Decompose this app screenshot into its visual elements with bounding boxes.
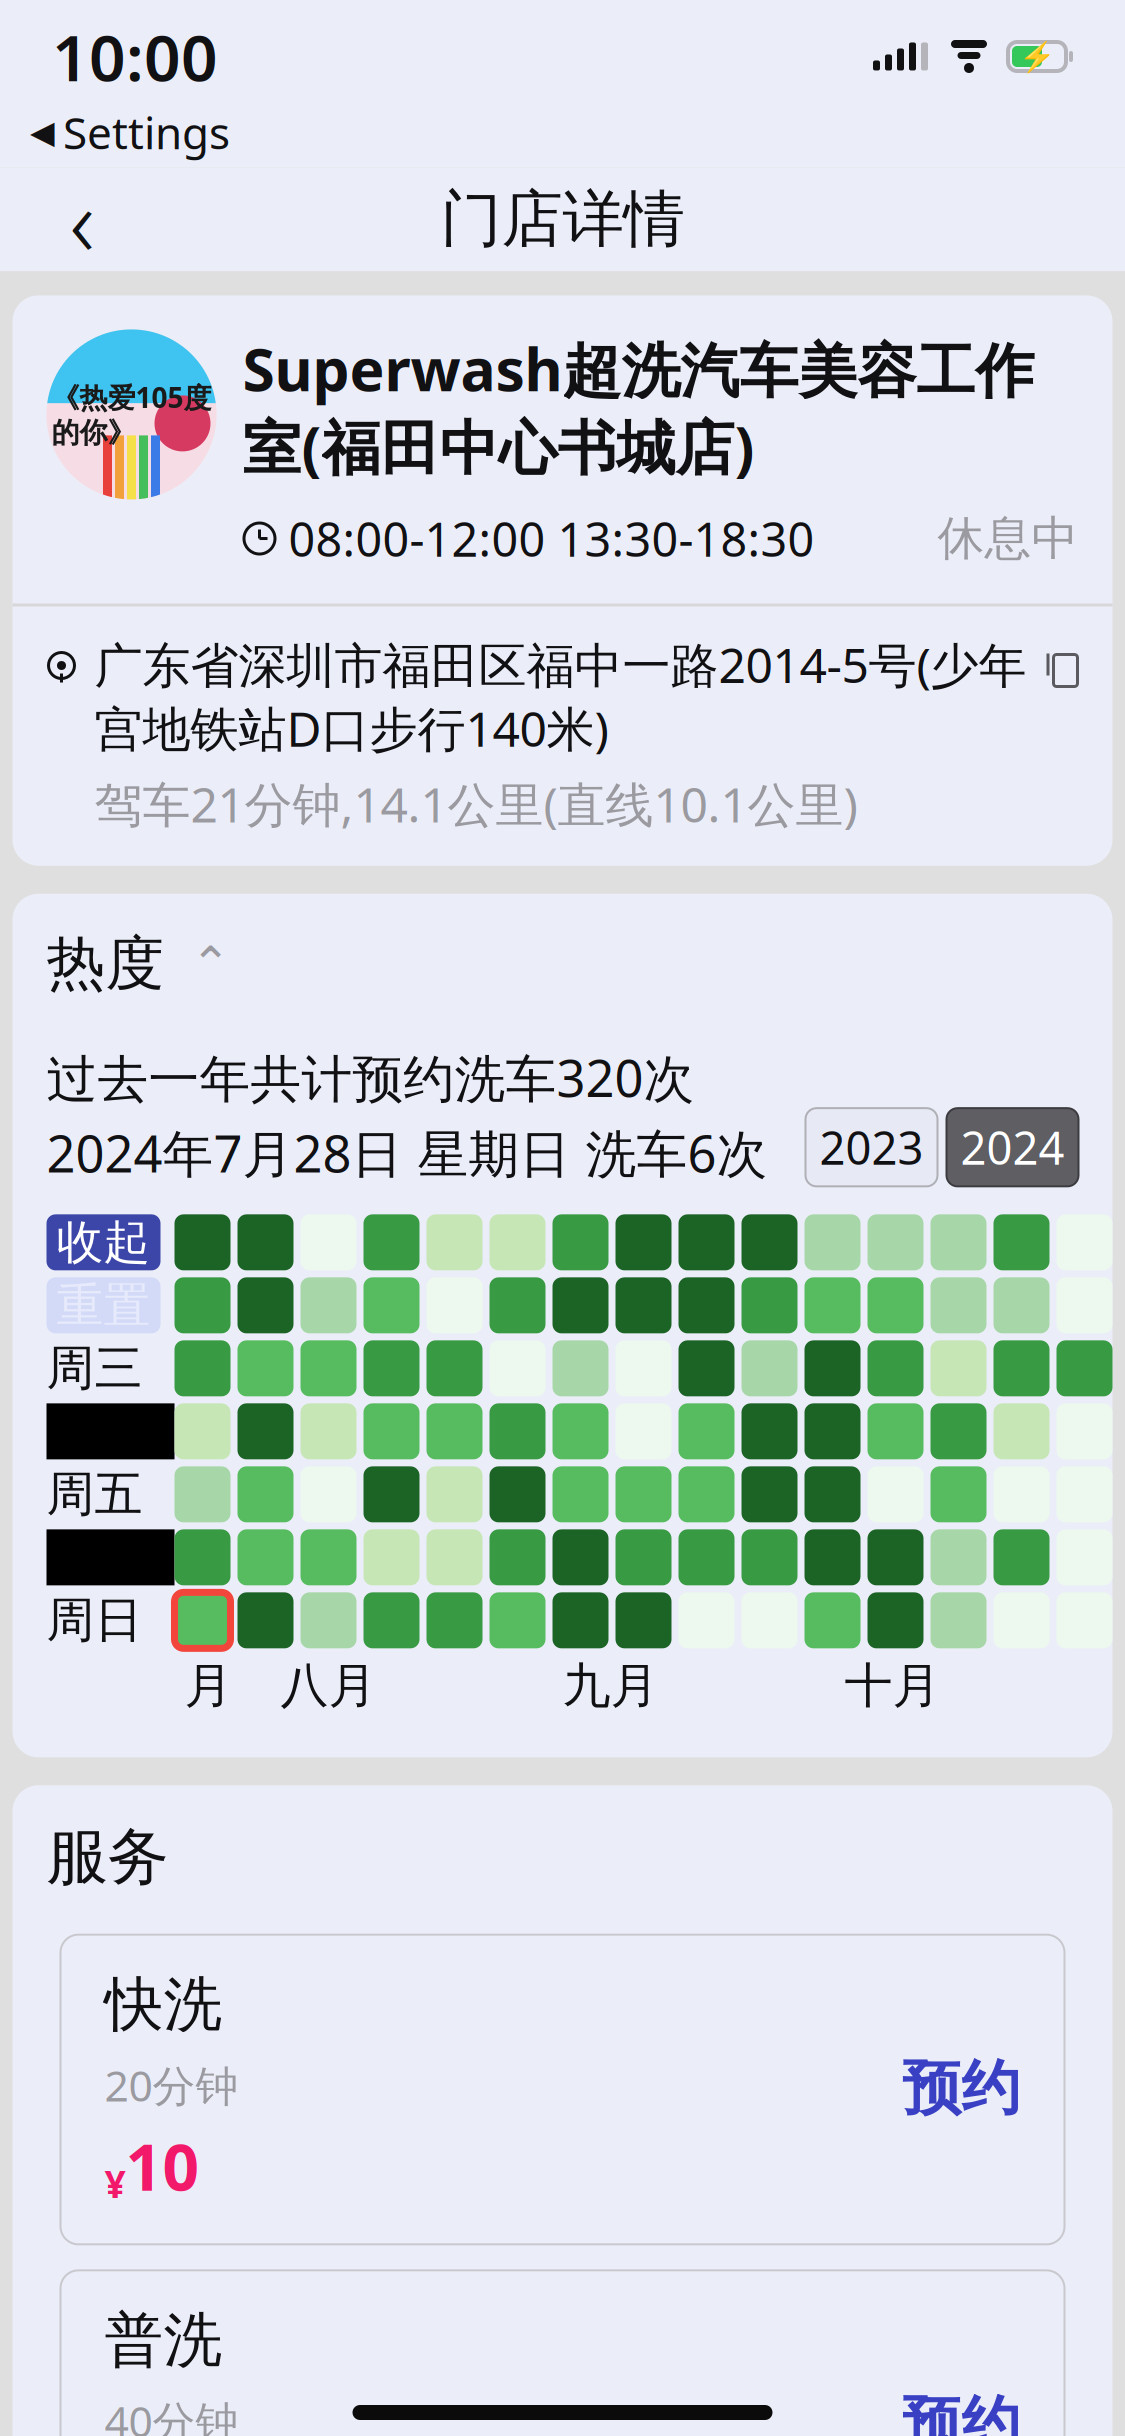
button[interactable]: 收起 <box>46 1214 160 1270</box>
button[interactable]: 热度 <box>12 894 1112 1000</box>
staticText: Superwash超洗汽车美容工作室(福田中心书城店) <box>242 329 1034 485</box>
staticText: 预约 <box>902 2388 1020 2436</box>
staticText: 2024 <box>960 1117 1064 1177</box>
staticText: 预约 <box>902 2052 1020 2125</box>
button[interactable]: 快洗 <box>60 1935 1064 2244</box>
staticText: 十月 <box>844 1656 940 1715</box>
staticText: 《热爱105度的你》 <box>51 379 211 450</box>
staticText: 周日 <box>46 1591 142 1650</box>
staticText: 快洗 <box>104 1969 222 2041</box>
button[interactable]: ◀ <box>0 99 260 167</box>
staticText: ¥ <box>104 2159 125 2208</box>
staticText: 休息中 <box>937 510 1078 567</box>
staticText: ◀ <box>30 114 55 150</box>
button[interactable]: Back <box>36 173 128 265</box>
staticText: 10:00 <box>52 14 218 99</box>
staticText: 周三 <box>46 1339 142 1398</box>
button[interactable]: 广东省深圳市福田区福中一路2014-5号(少年宫地铁站D口步行140米) <box>12 606 1112 866</box>
button[interactable]: 2024 <box>946 1108 1078 1186</box>
button[interactable]: 2023 <box>805 1108 937 1186</box>
staticText: ‹ <box>69 156 94 283</box>
button[interactable]: 普洗 <box>60 2270 1064 2436</box>
staticText: 08:00-12:00 13:30-18:30 <box>276 507 814 569</box>
staticText: 重置 <box>56 1277 150 1334</box>
staticText: 收起 <box>56 1214 150 1271</box>
staticText: 服务 <box>46 1819 168 1895</box>
staticText: 2023 <box>819 1117 923 1177</box>
staticText: ⌃ <box>190 936 230 991</box>
button[interactable]: 重置 <box>46 1277 160 1333</box>
staticText: 门店详情 <box>440 182 684 257</box>
staticText: 月 <box>184 1656 232 1715</box>
staticText: 过去一年共计预约洗车320次 <box>46 1044 694 1111</box>
staticText: 2024年7月28日 星期日 洗车6次 <box>46 1119 767 1186</box>
staticText: 普洗 <box>104 2304 222 2376</box>
staticText: 周五 <box>46 1465 142 1524</box>
staticText: 驾车21分钟,14.1公里(直线10.1公里) <box>94 772 857 836</box>
staticText: Settings <box>63 103 230 161</box>
staticText: 广东省深圳市福田区福中一路2014-5号(少年宫地铁站D口步行140米) <box>94 632 1026 760</box>
staticText: ⚡ <box>1018 40 1055 73</box>
staticText: 40分钟 <box>104 2392 238 2436</box>
staticText: 八月 <box>280 1656 376 1715</box>
staticText: 10 <box>125 2123 199 2208</box>
staticText: 热度 <box>46 928 164 1000</box>
staticText: 九月 <box>562 1656 658 1715</box>
staticText: 20分钟 <box>104 2057 238 2113</box>
